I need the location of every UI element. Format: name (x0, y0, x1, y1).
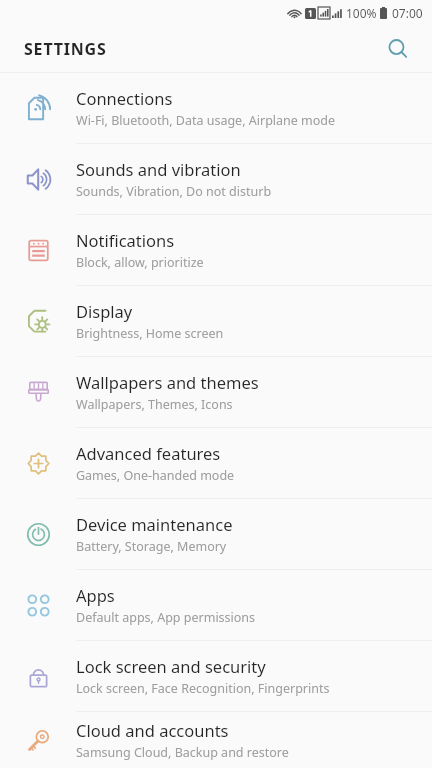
staticText: Wallpapers and themes (76, 371, 259, 393)
button[interactable]: Advanced features (0, 428, 432, 498)
staticText: Battery, Storage, Memory (76, 538, 227, 555)
staticText: Sounds and vibration (76, 158, 241, 180)
button[interactable]: Device maintenance (0, 499, 432, 569)
staticText: Samsung Cloud, Backup and restore (76, 744, 289, 761)
button[interactable]: Notifications (0, 215, 432, 285)
staticText: Notifications (76, 229, 175, 251)
staticText: Connections (76, 87, 173, 109)
button[interactable]: Search (378, 29, 418, 69)
staticText: Brightness, Home screen (76, 325, 224, 342)
staticText: 07:00 (392, 5, 423, 21)
staticText: Display (76, 300, 133, 322)
button[interactable]: Connections (0, 73, 432, 143)
button[interactable]: Sounds and vibration (0, 144, 432, 214)
staticText: Cloud and accounts (76, 719, 229, 741)
button[interactable]: Lock screen and security (0, 641, 432, 711)
staticText: Lock screen, Face Recognition, Fingerpri… (76, 680, 330, 697)
staticText: Device maintenance (76, 513, 233, 535)
staticText: Default apps, App permissions (76, 609, 256, 626)
button[interactable]: Apps (0, 570, 432, 640)
staticText: SETTINGS (24, 38, 107, 60)
staticText: Block, allow, prioritize (76, 254, 204, 271)
button[interactable]: Cloud and accounts (0, 712, 432, 768)
staticText: Apps (76, 584, 115, 606)
staticText: Sounds, Vibration, Do not disturb (76, 183, 272, 200)
staticText: Wi-Fi, Bluetooth, Data usage, Airplane m… (76, 112, 336, 129)
staticText: Lock screen and security (76, 655, 266, 677)
staticText: 100% (346, 5, 377, 21)
staticText: Games, One-handed mode (76, 467, 235, 484)
staticText: Advanced features (76, 442, 221, 464)
button[interactable]: Wallpapers and themes (0, 357, 432, 427)
button[interactable]: Display (0, 286, 432, 356)
staticText: Wallpapers, Themes, Icons (76, 396, 233, 413)
